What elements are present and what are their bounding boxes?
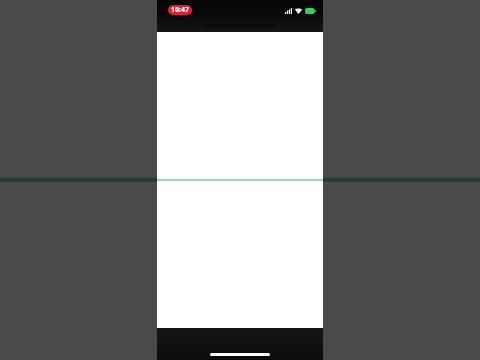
button[interactable]: Status: signal, Wi-Fi, battery xyxy=(285,8,316,14)
staticText: 10:47 xyxy=(171,5,189,15)
button[interactable] xyxy=(157,32,323,328)
button[interactable]: Home xyxy=(210,353,270,356)
button[interactable]: Screen recording in progress, 10:47 xyxy=(168,5,192,15)
